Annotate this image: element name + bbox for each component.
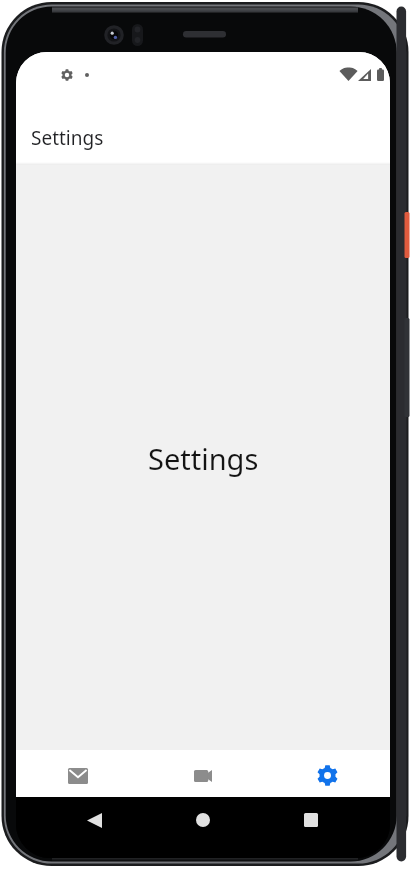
- button[interactable]: Home: [173, 790, 233, 850]
- button[interactable]: Back: [64, 790, 124, 850]
- staticText: Settings: [148, 439, 259, 478]
- button[interactable]: Email: [16, 750, 140, 797]
- button[interactable]: Recent apps: [281, 790, 341, 850]
- button[interactable]: Settings: [265, 750, 390, 797]
- button[interactable]: Video calls: [140, 750, 265, 797]
- staticText: Settings: [31, 125, 104, 151]
